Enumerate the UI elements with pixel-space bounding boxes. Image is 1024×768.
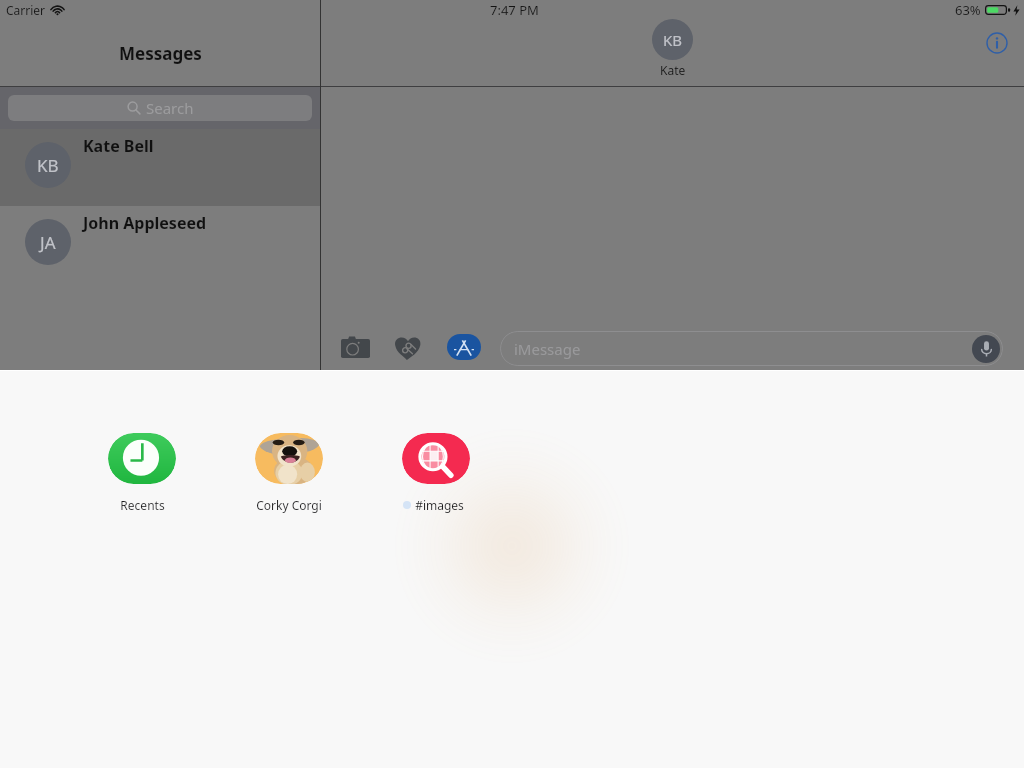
button[interactable]: Recents — [69, 433, 215, 513]
staticText: #images — [415, 497, 464, 513]
button[interactable]: KB — [0, 129, 320, 206]
staticText: Kate — [660, 62, 686, 78]
staticText: Messages — [119, 42, 202, 65]
staticText: iMessage — [514, 339, 581, 359]
button[interactable]: App Store — [447, 334, 481, 360]
button[interactable]: #images — [363, 433, 509, 513]
button[interactable]: Corky Corgi — [216, 433, 362, 513]
button[interactable]: Digital Touch — [391, 330, 425, 364]
staticText: Carrier — [6, 2, 46, 18]
staticText: 63% — [955, 1, 981, 19]
staticText: Corky Corgi — [256, 497, 322, 513]
button[interactable]: iMessage — [500, 331, 1003, 366]
staticText: KB — [663, 30, 683, 50]
staticText: Search — [146, 98, 194, 118]
staticText: Kate Bell — [83, 135, 154, 157]
button[interactable]: Search — [8, 95, 312, 121]
staticText: 7:47 PM — [490, 1, 539, 19]
button[interactable]: JA — [0, 206, 320, 283]
staticText: John Appleseed — [83, 212, 207, 234]
button[interactable]: Dictate — [972, 335, 1000, 363]
staticText: KB — [37, 154, 59, 177]
staticText: Recents — [120, 497, 165, 513]
button[interactable]: Camera — [338, 330, 372, 364]
button[interactable]: KB — [652, 19, 693, 78]
staticText: JA — [40, 231, 56, 254]
button[interactable]: Details — [984, 30, 1010, 56]
